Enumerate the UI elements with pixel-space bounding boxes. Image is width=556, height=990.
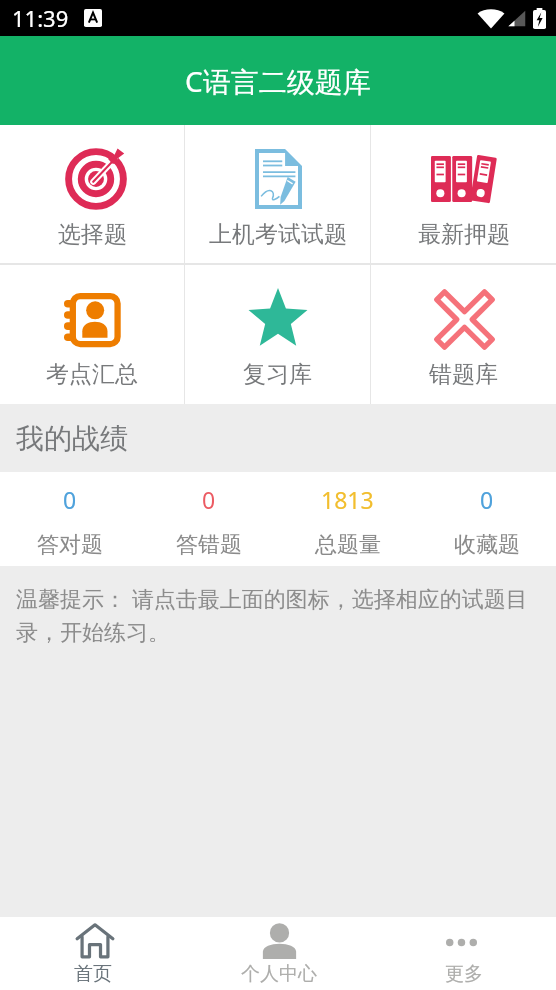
- staticText: 11:39: [12, 3, 69, 33]
- staticText: 上机考试试题: [209, 220, 347, 249]
- button[interactable]: 考点汇总: [0, 265, 184, 404]
- button[interactable]: 最新押题: [371, 125, 556, 263]
- staticText: 答错题: [176, 531, 242, 559]
- button[interactable]: 个人中心: [186, 917, 371, 990]
- button[interactable]: 更多: [371, 917, 556, 990]
- staticText: 0: [480, 484, 494, 515]
- button[interactable]: 0: [139, 472, 278, 566]
- button[interactable]: 0: [417, 472, 556, 566]
- staticText: C语言二级题库: [185, 62, 371, 100]
- button[interactable]: 0: [0, 472, 139, 566]
- button[interactable]: 首页: [0, 917, 186, 990]
- staticText: 总题量: [315, 531, 381, 559]
- staticText: 收藏题: [454, 531, 520, 559]
- button[interactable]: 复习库: [185, 265, 370, 404]
- staticText: 选择题: [58, 220, 127, 249]
- staticText: 更多: [445, 962, 483, 986]
- staticText: 错题库: [429, 360, 498, 389]
- staticText: 我的战绩: [16, 421, 128, 456]
- button[interactable]: 1813: [278, 472, 417, 566]
- button[interactable]: 选择题: [0, 125, 184, 263]
- staticText: 1813: [321, 484, 374, 515]
- staticText: 个人中心: [241, 962, 317, 986]
- staticText: 首页: [74, 962, 112, 986]
- button[interactable]: 上机考试试题: [185, 125, 370, 263]
- staticText: 最新押题: [418, 220, 510, 249]
- staticText: 答对题: [37, 531, 103, 559]
- staticText: 温馨提示： 请点击最上面的图标，选择相应的试题目录，开始练习。: [16, 583, 538, 647]
- staticText: 0: [202, 484, 216, 515]
- staticText: 复习库: [243, 360, 312, 389]
- staticText: 0: [63, 484, 77, 515]
- button[interactable]: 错题库: [371, 265, 556, 404]
- staticText: 考点汇总: [46, 360, 138, 389]
